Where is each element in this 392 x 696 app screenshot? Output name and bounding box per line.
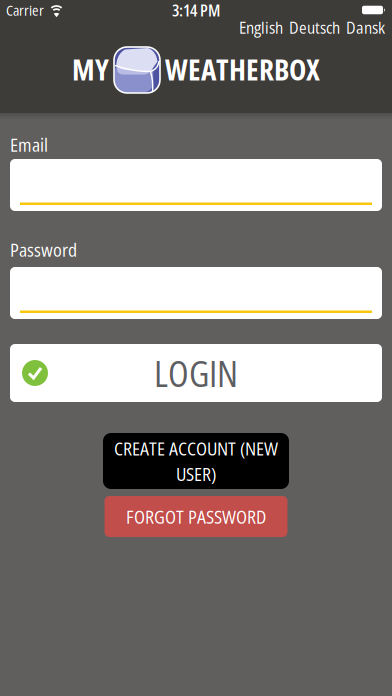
staticText: LOGIN	[154, 348, 238, 397]
staticText: Dansk	[346, 17, 385, 38]
staticText: CREATE ACCOUNT (NEW	[114, 436, 278, 461]
button[interactable]: Dansk	[346, 17, 385, 38]
button[interactable]: Deutsch	[289, 17, 340, 38]
button[interactable]: Password	[10, 267, 382, 319]
staticText: Carrier	[6, 0, 44, 20]
button[interactable]: FORGOT PASSWORD	[104, 496, 287, 537]
staticText: FORGOT PASSWORD	[126, 504, 266, 529]
button[interactable]: LOGIN	[10, 344, 382, 402]
button[interactable]: Email	[10, 159, 382, 211]
staticText: MY	[72, 49, 109, 89]
staticText: Email	[10, 132, 48, 157]
staticText: WEATHERBOX	[165, 49, 320, 89]
staticText: 3:14 PM	[172, 0, 220, 21]
staticText: USER)	[176, 461, 216, 486]
staticText: English	[239, 17, 283, 38]
button[interactable]: English	[239, 17, 283, 38]
staticText: Password	[10, 237, 77, 262]
button[interactable]: CREATE ACCOUNT (NEW	[103, 433, 289, 489]
staticText: Deutsch	[289, 17, 340, 38]
